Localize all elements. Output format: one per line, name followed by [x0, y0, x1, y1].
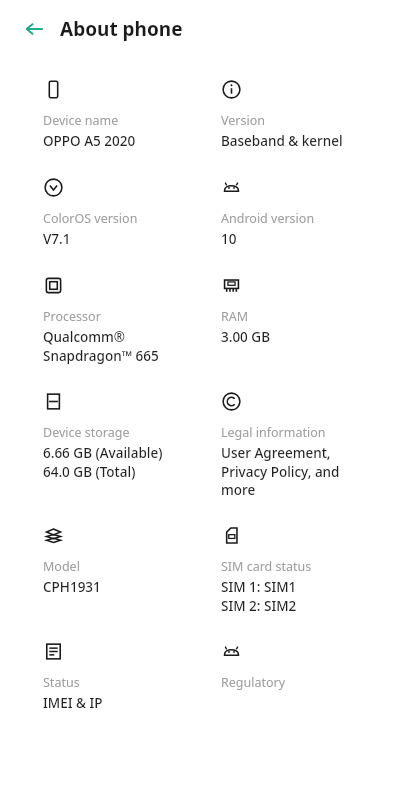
button[interactable]: Model — [43, 525, 183, 596]
staticText: ColorOS version — [43, 210, 138, 227]
button[interactable]: ColorOS version — [43, 177, 183, 248]
staticText: RAM — [221, 308, 249, 325]
button[interactable]: Device storage — [43, 391, 183, 480]
button[interactable]: RAM — [221, 275, 371, 346]
button[interactable]: Device name — [43, 79, 183, 150]
button[interactable]: Version — [221, 79, 371, 150]
button[interactable]: Processor — [43, 275, 183, 364]
button[interactable]: Legal information — [221, 391, 371, 498]
staticText: Device name — [43, 112, 119, 129]
staticText: Version — [221, 112, 265, 129]
staticText: Processor — [43, 308, 101, 325]
staticText: Android version — [221, 210, 315, 227]
button[interactable]: Regulatory — [221, 641, 371, 691]
staticText: V7.1 — [43, 230, 71, 248]
staticText: SIM card status — [221, 558, 312, 575]
staticText: User Agreement, Privacy Policy, and more — [221, 444, 371, 498]
staticText: Model — [43, 558, 80, 575]
staticText: Qualcomm® Snapdragon™ 665 — [43, 328, 183, 364]
button[interactable]: Android version — [221, 177, 371, 248]
staticText: 10 — [221, 230, 237, 248]
staticText: SIM 1: SIM1 SIM 2: SIM2 — [221, 578, 297, 614]
staticText: Baseband & kernel — [221, 132, 343, 150]
staticText: Status — [43, 674, 80, 691]
staticText: IMEI & IP — [43, 694, 103, 712]
staticText: Regulatory — [221, 674, 286, 691]
staticText: Legal information — [221, 424, 326, 441]
staticText: 6.66 GB (Available) 64.0 GB (Total) — [43, 444, 163, 480]
staticText: OPPO A5 2020 — [43, 132, 136, 150]
staticText: 3.00 GB — [221, 328, 270, 346]
staticText: CPH1931 — [43, 578, 101, 596]
button[interactable]: SIM card status — [221, 525, 371, 614]
button[interactable]: Back — [14, 9, 54, 49]
staticText: About phone — [60, 16, 183, 42]
staticText: Device storage — [43, 424, 130, 441]
button[interactable]: Status — [43, 641, 183, 712]
